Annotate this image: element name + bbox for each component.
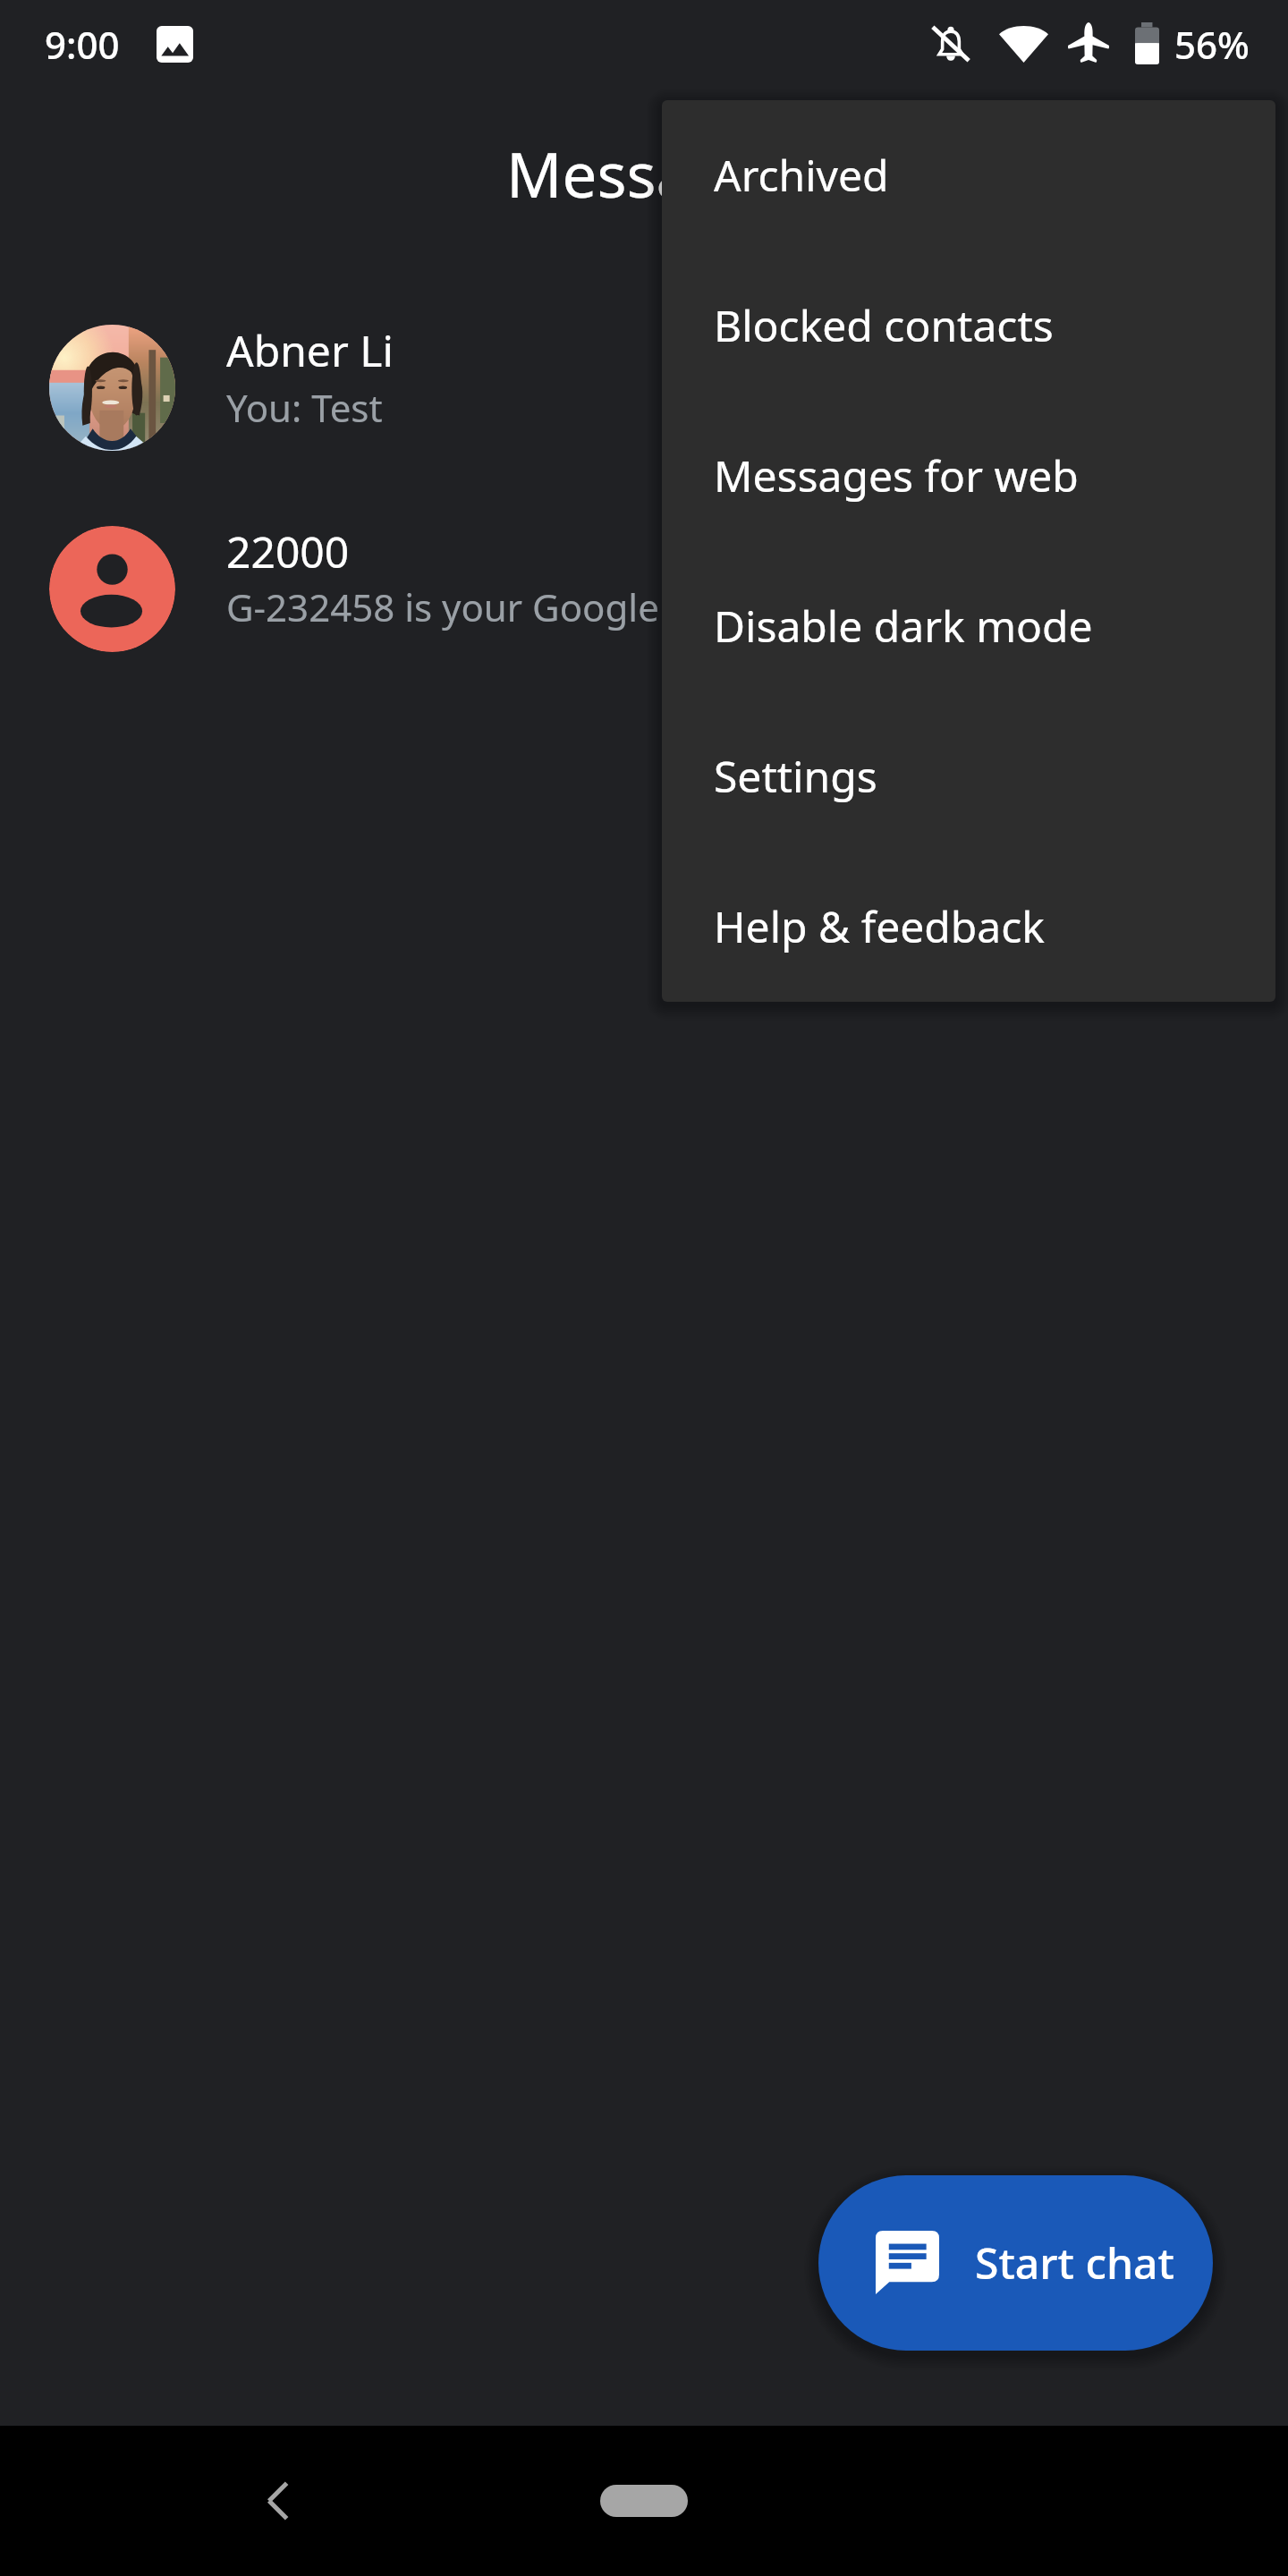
button[interactable]: Archived [662, 100, 1275, 250]
button[interactable]: Messages for web [662, 401, 1275, 551]
staticText: G-232458 is your Google verification cod… [226, 581, 1288, 632]
staticText: Help & feedback [714, 897, 1045, 955]
staticText: Start chat [975, 2233, 1174, 2292]
button[interactable]: Blocked contacts [662, 250, 1275, 401]
staticText: Blocked contacts [714, 296, 1054, 354]
staticText: 56% [1174, 19, 1250, 70]
staticText: Messages [506, 131, 793, 216]
staticText: You: Test [226, 382, 1288, 433]
staticText: Settings [714, 747, 877, 805]
staticText: Archived [714, 146, 889, 204]
button[interactable]: Disable dark mode [662, 551, 1275, 701]
button[interactable]: Abner Li [0, 298, 1288, 477]
button[interactable]: Start chat [818, 2175, 1213, 2351]
button[interactable]: 22000 [0, 499, 1288, 678]
staticText: Abner Li [226, 321, 394, 379]
button[interactable]: Back [251, 2474, 305, 2528]
button[interactable]: Help & feedback [662, 852, 1275, 1002]
button[interactable]: Settings [662, 701, 1275, 852]
staticText: Messages for web [714, 446, 1079, 504]
button[interactable]: Home [600, 2485, 688, 2517]
staticText: Disable dark mode [714, 597, 1093, 655]
staticText: 9:00 [45, 19, 120, 70]
staticText: 22000 [226, 522, 350, 580]
